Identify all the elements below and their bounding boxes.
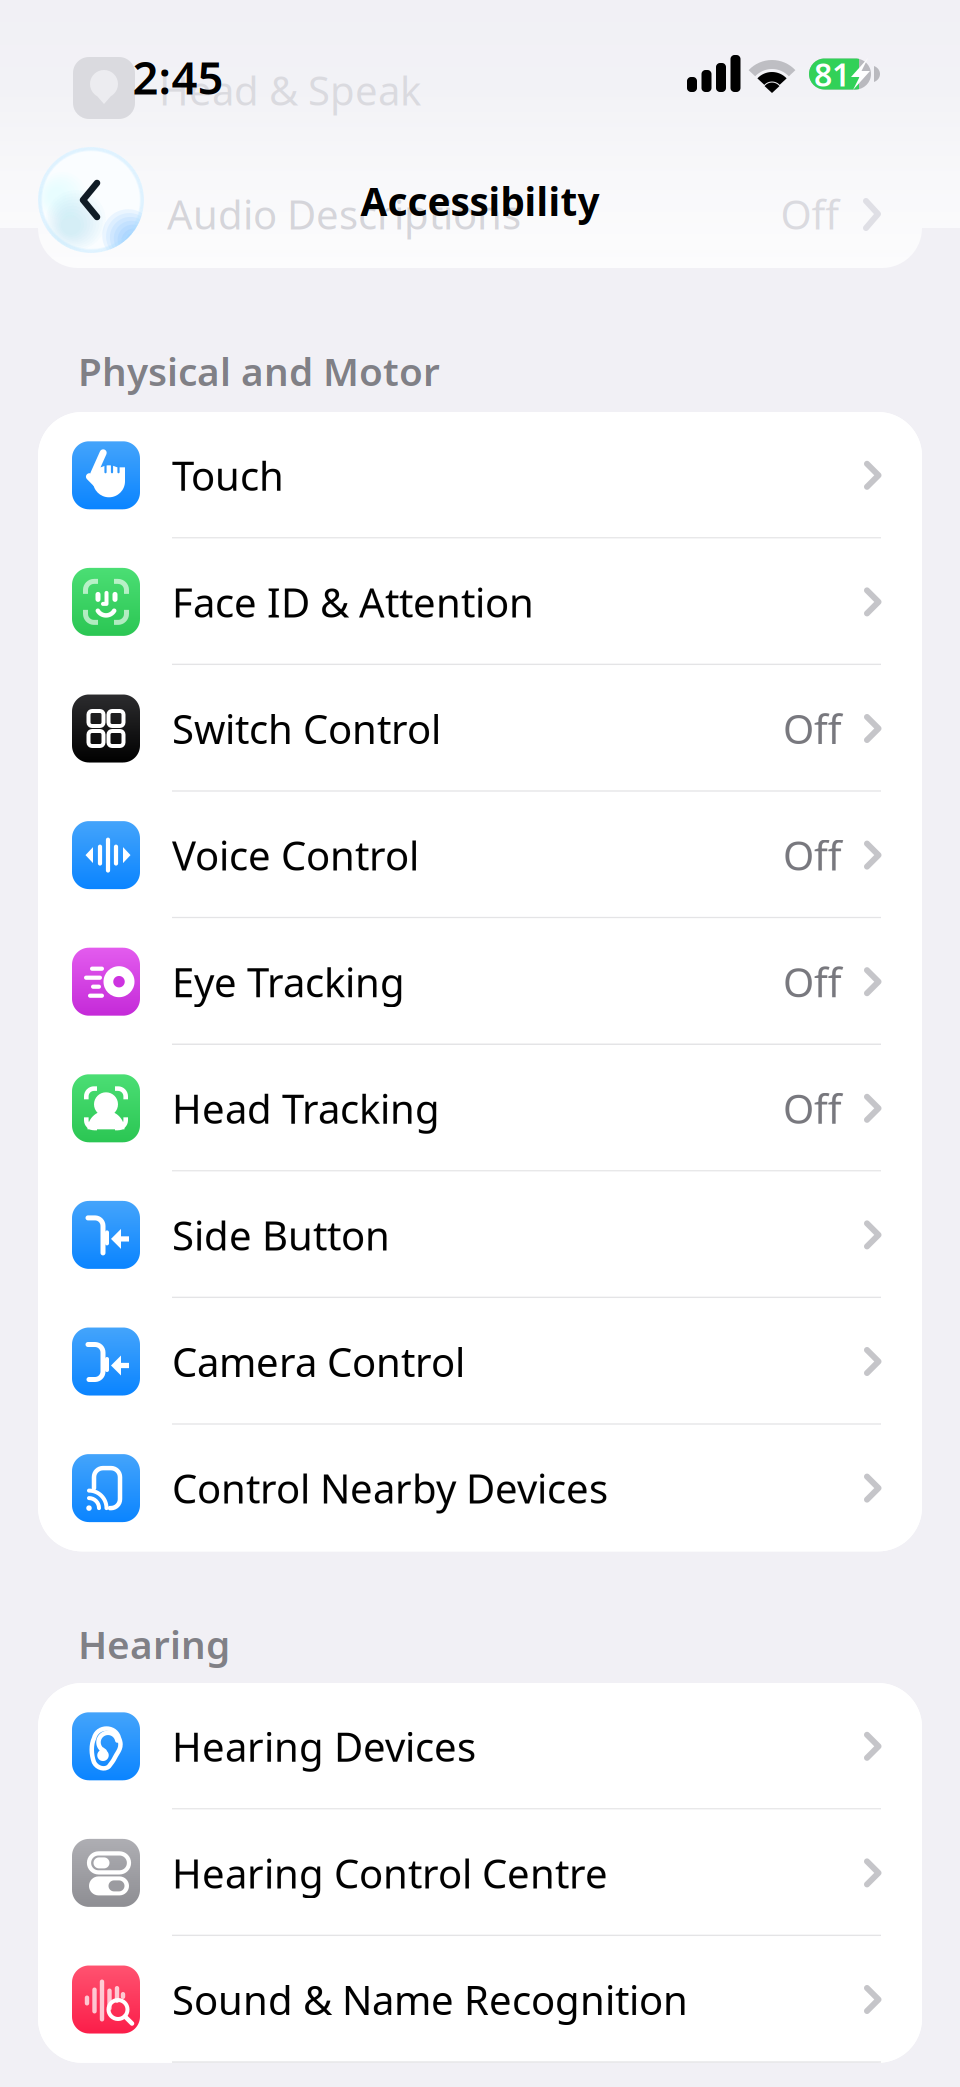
button[interactable]: Hearing Control Centre [38, 1810, 922, 1936]
staticText: Off [783, 1082, 842, 1135]
button[interactable]: Camera Control [38, 1298, 922, 1425]
button[interactable]: Back [38, 147, 144, 253]
staticText: Voice Control [172, 828, 419, 882]
button[interactable]: Voice Control [38, 792, 922, 918]
staticText: Camera Control [172, 1335, 465, 1388]
staticText: Accessibility [360, 175, 599, 227]
staticText: Face ID & Attention [172, 575, 534, 628]
staticText: Audio Descriptions [167, 187, 521, 240]
staticText: Off [783, 702, 842, 755]
staticText: Physical and Motor [78, 345, 440, 397]
staticText: Touch [172, 449, 284, 502]
staticText: Sound & Name Recognition [172, 1973, 688, 2026]
button[interactable]: Switch Control [38, 665, 922, 792]
staticText: 81 [814, 53, 850, 95]
staticText: Off [783, 955, 842, 1008]
staticText: Control Nearby Devices [172, 1461, 608, 1515]
staticText: Off [783, 828, 842, 882]
button[interactable]: Control Nearby Devices [38, 1425, 922, 1551]
staticText: Hearing Control Centre [172, 1846, 608, 1899]
staticText: Head & Speak [159, 63, 421, 116]
button[interactable]: Face ID & Attention [38, 539, 922, 665]
staticText: Head Tracking [172, 1082, 440, 1135]
button[interactable]: Sound & Name Recognition [38, 1936, 922, 2063]
staticText: 2:45 [132, 47, 223, 107]
staticText: Off [780, 187, 839, 240]
staticText: Switch Control [172, 702, 441, 755]
staticText: Side Button [172, 1208, 390, 1261]
staticText: Hearing [78, 1618, 230, 1670]
staticText: Hearing Devices [172, 1720, 476, 1773]
button[interactable]: Eye Tracking [38, 918, 922, 1045]
button[interactable]: Side Button [38, 1172, 922, 1298]
staticText: Eye Tracking [172, 955, 405, 1008]
button[interactable]: Head Tracking [38, 1045, 922, 1172]
button[interactable]: Touch [38, 412, 922, 539]
button[interactable]: Hearing Devices [38, 1683, 922, 1810]
